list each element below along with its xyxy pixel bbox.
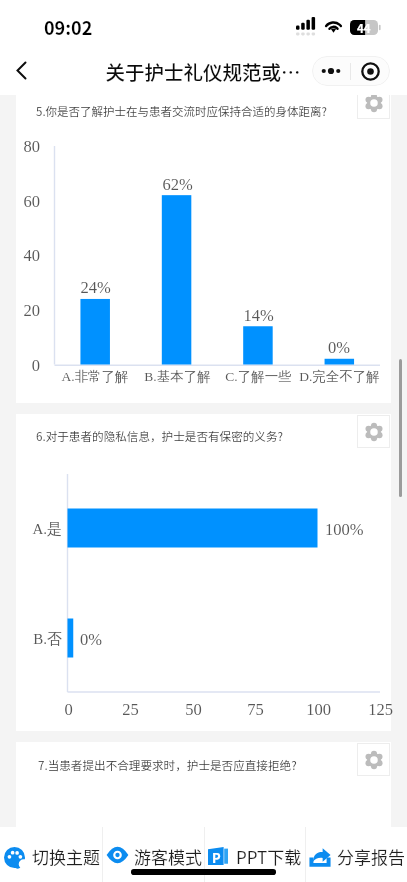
staticText: C.了解一些 bbox=[225, 368, 292, 385]
staticText: 0 bbox=[64, 700, 73, 718]
staticText: 7.当患者提出不合理要求时，护士是否应直接拒绝? bbox=[38, 757, 297, 774]
staticText: 62% bbox=[162, 175, 193, 193]
staticText: 14% bbox=[243, 306, 274, 324]
staticText: 6.对于患者的隐私信息，护士是否有保密的义务? bbox=[36, 428, 284, 445]
staticText: B.基本了解 bbox=[144, 368, 211, 385]
staticText: B.否 bbox=[33, 630, 62, 649]
staticText: 24% bbox=[80, 278, 111, 296]
staticText: 0% bbox=[328, 338, 350, 356]
staticText: 80 bbox=[23, 137, 40, 155]
staticText: P bbox=[212, 848, 221, 866]
button[interactable]: 分享报告 bbox=[305, 827, 407, 882]
staticText: 40 bbox=[23, 246, 40, 264]
staticText: PPT下载 bbox=[236, 844, 302, 868]
button[interactable]: Close mini program bbox=[351, 56, 390, 86]
staticText: A.非常了解 bbox=[61, 368, 129, 385]
button[interactable]: Chart settings bbox=[357, 95, 390, 119]
button[interactable]: More options bbox=[312, 56, 350, 86]
staticText: A.是 bbox=[32, 520, 62, 539]
staticText: 75 bbox=[247, 700, 264, 718]
staticText: 0% bbox=[80, 630, 102, 648]
staticText: 20 bbox=[23, 301, 40, 319]
staticText: 60 bbox=[23, 192, 40, 210]
staticText: 100% bbox=[325, 520, 364, 538]
button[interactable]: 切换主题 bbox=[0, 827, 102, 882]
staticText: 游客模式 bbox=[134, 844, 202, 868]
button[interactable]: 游客模式 bbox=[102, 827, 204, 882]
staticText: 0 bbox=[31, 356, 40, 374]
staticText: 100 bbox=[306, 700, 331, 718]
staticText: 关于护士礼仪规范或… bbox=[105, 57, 301, 85]
staticText: 25 bbox=[122, 700, 139, 718]
staticText: 44 bbox=[357, 20, 371, 35]
button[interactable]: Chart settings bbox=[357, 415, 390, 448]
staticText: 切换主题 bbox=[32, 844, 100, 868]
staticText: D.完全不了解 bbox=[299, 368, 380, 385]
staticText: 125 bbox=[368, 700, 393, 718]
button[interactable]: P bbox=[204, 827, 306, 882]
staticText: 5.你是否了解护士在与患者交流时应保持合适的身体距离? bbox=[36, 103, 328, 120]
staticText: 09:02 bbox=[44, 14, 93, 40]
staticText: 50 bbox=[185, 700, 202, 718]
button[interactable]: Back bbox=[6, 55, 37, 86]
staticText: 分享报告 bbox=[337, 844, 405, 868]
button[interactable]: Chart settings bbox=[357, 743, 390, 776]
